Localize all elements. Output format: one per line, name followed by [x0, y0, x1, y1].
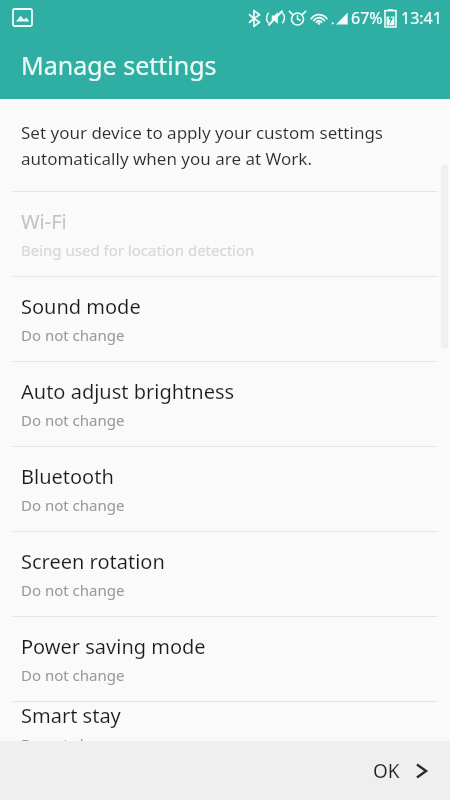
- staticText: Wi-Fi: [21, 208, 67, 235]
- staticText: OK: [373, 758, 400, 784]
- button[interactable]: Smart stay: [0, 702, 450, 741]
- button[interactable]: Auto adjust brightness: [0, 362, 450, 446]
- staticText: Auto adjust brightness: [21, 378, 235, 405]
- button[interactable]: Bluetooth: [0, 447, 450, 531]
- staticText: Do not change: [21, 410, 125, 430]
- staticText: Power saving mode: [21, 633, 206, 660]
- button[interactable]: Sound mode: [0, 277, 450, 361]
- staticText: Do not change: [21, 495, 125, 515]
- staticText: Do not change: [21, 580, 125, 600]
- button[interactable]: OK: [351, 746, 450, 796]
- button[interactable]: Wi-Fi: [0, 192, 450, 276]
- staticText: Being used for location detection: [21, 240, 255, 260]
- staticText: Screen rotation: [21, 548, 165, 575]
- staticText: 67%: [351, 7, 383, 29]
- staticText: Do not change: [21, 665, 125, 685]
- button[interactable]: Power saving mode: [0, 617, 450, 701]
- staticText: Manage settings: [21, 48, 217, 82]
- staticText: Sound mode: [21, 293, 141, 320]
- staticText: Do not change: [21, 734, 125, 741]
- staticText: Set your device to apply your custom set…: [21, 121, 436, 170]
- button[interactable]: Screen rotation: [0, 532, 450, 616]
- staticText: 13:41: [401, 7, 442, 29]
- staticText: Do not change: [21, 325, 125, 345]
- staticText: Smart stay: [21, 702, 121, 729]
- staticText: Bluetooth: [21, 463, 114, 490]
